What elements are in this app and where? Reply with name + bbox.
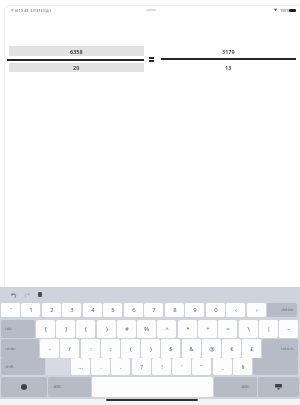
button[interactable]: ABC [214,377,257,397]
staticText: % [144,325,149,333]
button[interactable]: ` [1,303,20,317]
button[interactable]: _ [213,358,232,375]
staticText: › [256,306,258,314]
button[interactable]: … [71,358,90,375]
button[interactable]: 1 [21,303,40,317]
button[interactable]: [ [36,320,55,338]
button[interactable]: 8 [165,303,184,317]
staticText: : [90,345,92,353]
button[interactable]: Undo [9,290,18,299]
staticText: 0 [214,306,218,314]
button[interactable]: § [233,358,252,375]
staticText: ABC [241,384,250,390]
button[interactable]: Paste [35,290,44,299]
button[interactable]: ) [141,339,160,358]
button[interactable]: 7 [144,303,163,317]
staticText: ' [181,363,183,371]
button[interactable]: tab [1,320,35,338]
staticText: ! [161,363,163,371]
staticText: ( [85,325,87,333]
button[interactable]: # [117,320,136,338]
staticText: ] [65,325,67,333]
staticText: ) [150,345,152,353]
staticText: \ [247,325,250,333]
staticText: ) [106,325,108,333]
button[interactable]: 0 [206,303,225,317]
staticText: $ [169,345,173,353]
button[interactable]: + [198,320,217,338]
button[interactable]: = [218,320,237,338]
staticText: delete [281,307,294,313]
button[interactable]: . [91,358,110,375]
staticText: _ [221,363,224,371]
staticText: undo [5,346,16,352]
button[interactable]: › [247,303,266,317]
button[interactable]: Hide keyboard [258,377,299,397]
staticText: 8 [173,306,177,314]
staticText: " [200,363,203,371]
button[interactable]: 6358 [9,46,144,56]
staticText: 100% [280,8,290,13]
staticText: 3 [70,306,74,314]
staticText: + [206,325,210,333]
staticText: , [120,363,122,371]
staticText: . [100,363,102,371]
button[interactable]: ABC [48,377,91,397]
staticText: ? [140,363,143,371]
button[interactable]: ~ [279,320,298,338]
staticText: 1 [29,306,33,314]
button[interactable]: ! [152,358,171,375]
button[interactable]: - [40,339,59,358]
staticText: @ [209,345,215,353]
staticText: ^ [165,325,169,333]
staticText: 4 [91,306,95,314]
button[interactable]: ( [76,320,95,338]
button[interactable]: Redo [22,290,31,299]
staticText: 20 [73,64,80,71]
button[interactable]: % [137,320,156,338]
button[interactable]: € [222,339,241,358]
button[interactable]: 4 [83,303,102,317]
button[interactable]: ; [101,339,120,358]
button[interactable]: * [178,320,197,338]
button[interactable]: , [111,358,130,375]
staticText: shift [5,364,14,370]
button[interactable]: 3 [62,303,81,317]
button[interactable]: Equals [149,57,154,61]
button[interactable]: ( [121,339,140,358]
button[interactable]: shift [1,358,45,375]
button[interactable]: ? [132,358,151,375]
button[interactable]: | [259,320,278,338]
button[interactable]: ) [97,320,116,338]
button[interactable]: : [81,339,100,358]
button[interactable]: ^ [157,320,176,338]
button[interactable]: & [182,339,201,358]
staticText: ABC [53,384,62,390]
button[interactable]: " [192,358,211,375]
button[interactable]: 6 [124,303,143,317]
button[interactable]: Emoji [1,377,47,397]
button[interactable]: $ [161,339,180,358]
button[interactable]: ‹ [226,303,245,317]
button[interactable]: 20 [9,63,144,72]
button[interactable]: \ [239,320,258,338]
button[interactable]: ] [56,320,75,338]
button[interactable]: delete [267,303,297,317]
button[interactable]: 9 [185,303,204,317]
button[interactable]: ' [172,358,191,375]
staticText: € [230,345,234,353]
staticText: = [226,325,230,333]
staticText: 6358 [70,48,83,55]
button[interactable]: undo [1,339,39,358]
staticText: return [281,346,294,352]
button[interactable]: 5 [103,303,122,317]
button[interactable]: return [262,339,298,358]
button[interactable]: 2 [42,303,61,317]
staticText: £ [250,345,254,353]
button[interactable]: £ [242,339,261,358]
button[interactable]: / [60,339,79,358]
button[interactable]: @ [202,339,221,358]
